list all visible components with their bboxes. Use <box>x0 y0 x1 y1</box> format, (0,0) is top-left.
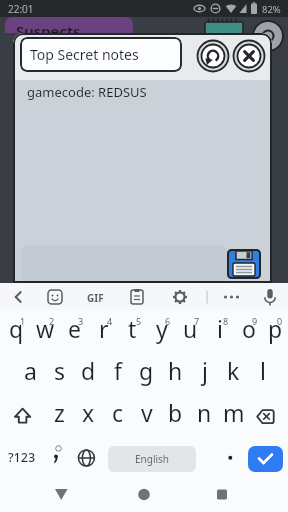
button[interactable] <box>196 39 230 73</box>
staticText: j <box>202 355 208 386</box>
staticText: s <box>54 355 66 386</box>
button[interactable]: m <box>219 395 248 437</box>
staticText: 5 <box>136 315 142 327</box>
button[interactable] <box>247 283 288 311</box>
button[interactable]: u <box>176 311 205 353</box>
staticText: h <box>168 355 183 386</box>
button[interactable]: a <box>16 353 45 395</box>
button[interactable]: f <box>103 353 132 395</box>
button[interactable]: l <box>248 353 277 395</box>
button[interactable] <box>83 283 124 311</box>
button[interactable] <box>21 245 228 283</box>
button[interactable]: e <box>60 311 89 353</box>
button[interactable]: h <box>161 353 190 395</box>
button[interactable]: b <box>161 395 190 437</box>
staticText: k <box>227 355 240 386</box>
button[interactable]: o <box>234 311 263 353</box>
button[interactable]: Suspects <box>5 17 133 33</box>
staticText: gamecode: REDSUS <box>27 83 147 101</box>
button[interactable]: English <box>108 446 196 472</box>
staticText: Suspects <box>16 21 81 33</box>
button[interactable]: i <box>205 311 234 353</box>
button[interactable]: k <box>219 353 248 395</box>
staticText: 8 <box>223 315 229 327</box>
staticText: 9 <box>252 315 258 327</box>
button[interactable] <box>248 446 283 472</box>
button[interactable] <box>0 477 96 512</box>
staticText: u <box>183 313 198 344</box>
button[interactable]: r <box>89 311 118 353</box>
staticText: i <box>217 313 223 344</box>
staticText: c <box>112 397 124 428</box>
button[interactable]: Top Secret notes <box>20 37 182 72</box>
button[interactable] <box>0 395 43 437</box>
staticText: b <box>168 397 183 428</box>
button[interactable]: v <box>132 395 161 437</box>
button[interactable]: j <box>190 353 219 395</box>
staticText: n <box>197 397 212 428</box>
button[interactable]: w <box>31 311 60 353</box>
staticText: 82% <box>262 3 281 16</box>
button[interactable] <box>206 283 247 311</box>
button[interactable]: n <box>190 395 219 437</box>
staticText: r <box>99 313 109 344</box>
button[interactable] <box>42 283 83 311</box>
staticText: Top Secret notes <box>30 45 139 64</box>
staticText: 3 <box>78 315 84 327</box>
staticText: f <box>114 355 122 386</box>
staticText: 4 <box>107 315 113 327</box>
button[interactable]: g <box>132 353 161 395</box>
staticText: d <box>81 355 96 386</box>
staticText: g <box>139 355 154 386</box>
button[interactable] <box>248 395 288 437</box>
staticText: 0 <box>277 315 283 327</box>
button[interactable]: d <box>74 353 103 395</box>
button[interactable] <box>124 283 165 311</box>
button[interactable]: y <box>147 311 176 353</box>
button[interactable] <box>43 437 72 477</box>
staticText: 2 <box>49 315 55 327</box>
staticText: m <box>223 397 245 428</box>
staticText: a <box>24 355 37 386</box>
staticText: x <box>82 397 95 428</box>
staticText: English <box>135 452 170 466</box>
button[interactable] <box>216 437 245 477</box>
staticText: l <box>260 355 266 386</box>
staticText: y <box>156 313 168 344</box>
button[interactable]: x <box>74 395 103 437</box>
staticText: 7 <box>194 315 200 327</box>
button[interactable]: c <box>103 395 132 437</box>
staticText: 1 <box>20 315 26 327</box>
button[interactable] <box>0 283 42 311</box>
button[interactable]: z <box>45 395 74 437</box>
button[interactable] <box>165 283 206 311</box>
staticText: o <box>242 313 256 344</box>
staticText: 22:01 <box>8 2 34 16</box>
staticText: w <box>36 313 55 344</box>
staticText: q <box>9 313 24 344</box>
button[interactable] <box>96 477 192 512</box>
staticText: e <box>68 313 81 344</box>
staticText: GIF <box>87 291 104 305</box>
staticText: ?123 <box>8 449 36 466</box>
staticText: z <box>54 397 65 428</box>
button[interactable]: s <box>45 353 74 395</box>
staticText: t <box>128 313 137 344</box>
staticText: 6 <box>165 315 171 327</box>
button[interactable]: p <box>263 311 288 353</box>
button[interactable]: ?123 <box>0 437 43 477</box>
staticText: v <box>141 397 153 428</box>
button[interactable] <box>232 39 266 73</box>
button[interactable] <box>72 437 101 477</box>
button[interactable] <box>227 249 261 279</box>
button[interactable] <box>192 477 288 512</box>
button[interactable]: t <box>118 311 147 353</box>
staticText: p <box>268 313 283 344</box>
button[interactable]: q <box>2 311 31 353</box>
